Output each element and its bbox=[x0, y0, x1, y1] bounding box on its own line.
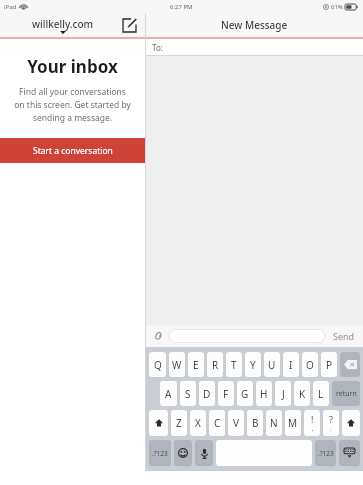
staticText: M bbox=[288, 416, 298, 430]
button[interactable]: Q bbox=[149, 352, 166, 377]
button[interactable]: ! bbox=[304, 410, 320, 436]
staticText: G bbox=[241, 387, 249, 401]
button[interactable]: D bbox=[199, 381, 215, 406]
button[interactable]: Start a conversation bbox=[0, 138, 145, 163]
staticText: willkelly.com bbox=[32, 17, 93, 31]
staticText: Start a conversation bbox=[33, 145, 113, 157]
button[interactable]: Send bbox=[331, 330, 357, 342]
button[interactable]: ? bbox=[323, 410, 339, 436]
staticText: O bbox=[306, 358, 314, 372]
staticText: H bbox=[260, 387, 268, 401]
staticText: W bbox=[172, 358, 182, 372]
staticText: ? bbox=[329, 413, 333, 425]
button[interactable]: X bbox=[190, 410, 206, 436]
button[interactable]: B bbox=[247, 410, 263, 436]
staticText: F bbox=[223, 387, 229, 401]
button[interactable]: Dictation bbox=[195, 440, 213, 466]
staticText: C bbox=[214, 416, 221, 430]
staticText: P bbox=[326, 358, 333, 372]
button[interactable]: N bbox=[266, 410, 282, 436]
staticText: E bbox=[193, 358, 199, 372]
button[interactable]: return bbox=[332, 381, 360, 406]
button[interactable]: R bbox=[207, 352, 223, 377]
button[interactable]: L bbox=[313, 381, 329, 406]
button[interactable]: Emoji bbox=[174, 440, 192, 466]
staticText: return bbox=[336, 389, 357, 399]
staticText: 61% bbox=[331, 3, 343, 11]
button[interactable]: M bbox=[285, 410, 301, 436]
staticText: iPad bbox=[4, 3, 17, 11]
staticText: .?123 bbox=[318, 449, 334, 458]
button[interactable]: P bbox=[321, 352, 337, 377]
button[interactable]: E bbox=[188, 352, 204, 377]
staticText: L bbox=[318, 387, 324, 401]
button[interactable]: Shift bbox=[342, 410, 360, 436]
button[interactable]: T bbox=[226, 352, 242, 377]
staticText: Send bbox=[333, 330, 355, 342]
button[interactable]: Z bbox=[171, 410, 187, 436]
button[interactable]: W bbox=[169, 352, 185, 377]
staticText: N bbox=[270, 416, 278, 430]
button[interactable]: C bbox=[209, 410, 225, 436]
staticText: .?123 bbox=[152, 449, 168, 458]
staticText: ! bbox=[311, 413, 314, 425]
staticText: R bbox=[212, 358, 219, 372]
button[interactable]: Backspace bbox=[340, 352, 360, 377]
staticText: A bbox=[165, 387, 172, 401]
button[interactable] bbox=[169, 329, 325, 343]
button[interactable]: V bbox=[228, 410, 244, 436]
button[interactable]: Attach file bbox=[152, 330, 164, 342]
button[interactable]: Y bbox=[245, 352, 261, 377]
staticText: Y bbox=[250, 358, 256, 372]
button[interactable]: Shift bbox=[149, 410, 168, 436]
staticText: New Message bbox=[221, 18, 288, 32]
staticText: Z bbox=[176, 416, 182, 430]
button[interactable]: .?123 bbox=[149, 440, 171, 466]
button[interactable]: A bbox=[160, 381, 177, 406]
staticText: . bbox=[330, 425, 332, 433]
button[interactable]: J bbox=[275, 381, 291, 406]
button[interactable]: H bbox=[256, 381, 272, 406]
staticText: B bbox=[252, 416, 259, 430]
staticText: V bbox=[233, 416, 239, 430]
staticText: , bbox=[312, 425, 314, 433]
button[interactable]: K bbox=[294, 381, 310, 406]
staticText: Your inbox bbox=[27, 55, 118, 78]
staticText: X bbox=[195, 416, 201, 430]
button[interactable]: I bbox=[283, 352, 299, 377]
button[interactable]: S bbox=[180, 381, 196, 406]
button[interactable]: U bbox=[264, 352, 280, 377]
staticText: U bbox=[268, 358, 276, 372]
staticText: K bbox=[299, 387, 306, 401]
staticText: I bbox=[289, 358, 293, 372]
staticText: Find all your conversations on this scre… bbox=[14, 86, 131, 124]
staticText: To: bbox=[152, 42, 163, 53]
button[interactable]: Compose new message bbox=[119, 15, 139, 35]
button[interactable]: O bbox=[302, 352, 318, 377]
button[interactable]: Hide keyboard bbox=[339, 440, 360, 466]
button[interactable]: G bbox=[237, 381, 253, 406]
staticText: T bbox=[231, 358, 237, 372]
button[interactable]: .?123 bbox=[315, 440, 336, 466]
staticText: D bbox=[203, 387, 211, 401]
staticText: S bbox=[185, 387, 191, 401]
staticText: J bbox=[282, 387, 285, 401]
button[interactable]: F bbox=[218, 381, 234, 406]
staticText: Q bbox=[154, 358, 162, 372]
staticText: 6:27 PM bbox=[170, 3, 193, 11]
button[interactable]: To: bbox=[146, 39, 363, 55]
